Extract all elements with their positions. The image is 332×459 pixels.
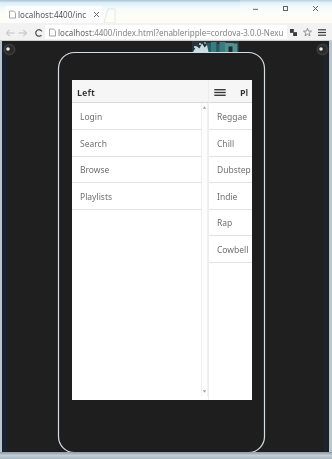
- button[interactable]: Dubstep: [208, 157, 252, 183]
- staticText: localhost: [58, 27, 92, 38]
- button[interactable]: Forward: [17, 27, 28, 38]
- staticText: Chill: [217, 138, 235, 150]
- button[interactable]: close: [300, 0, 330, 16]
- button[interactable]: Chill: [208, 130, 252, 157]
- staticText: Dubstep: [217, 164, 251, 176]
- button[interactable]: max: [270, 0, 300, 16]
- staticText: localhost:4400/inc: [18, 9, 87, 20]
- button[interactable]: Extension: [287, 26, 300, 38]
- button[interactable]: Chrome menu: [316, 26, 328, 38]
- button[interactable]: Login: [72, 103, 208, 130]
- staticText: Search: [80, 138, 107, 150]
- button[interactable]: Browse: [72, 157, 208, 183]
- button[interactable]: Cowbell: [208, 236, 252, 263]
- staticText: :4400/index.html?enableripple=cordova-3.…: [92, 27, 284, 38]
- button[interactable]: Back: [4, 27, 15, 38]
- staticText: Rap: [217, 217, 233, 229]
- staticText: Indie: [217, 191, 238, 203]
- staticText: Cowbell: [217, 244, 249, 256]
- button[interactable]: Playlists: [72, 183, 208, 210]
- button[interactable]: localhost:4400/inc: [5, 6, 103, 23]
- button[interactable]: Rap: [208, 210, 252, 236]
- button[interactable]: Indie: [208, 183, 252, 210]
- staticText: Reggae: [217, 111, 248, 123]
- staticText: Left: [77, 86, 95, 98]
- staticText: Login: [80, 111, 103, 123]
- button[interactable]: localhost: [45, 25, 287, 39]
- staticText: Playlists: [80, 191, 113, 203]
- staticText: Browse: [80, 164, 110, 176]
- button[interactable]: Reggae: [208, 103, 252, 130]
- button[interactable]: Close tab: [92, 10, 101, 19]
- button[interactable]: Search: [72, 130, 208, 157]
- staticText: Pla: [240, 86, 252, 98]
- button[interactable]: Menu: [212, 83, 228, 101]
- button[interactable]: min: [240, 0, 270, 16]
- button[interactable]: Bookmark: [301, 26, 313, 38]
- button[interactable]: Reload: [33, 27, 44, 38]
